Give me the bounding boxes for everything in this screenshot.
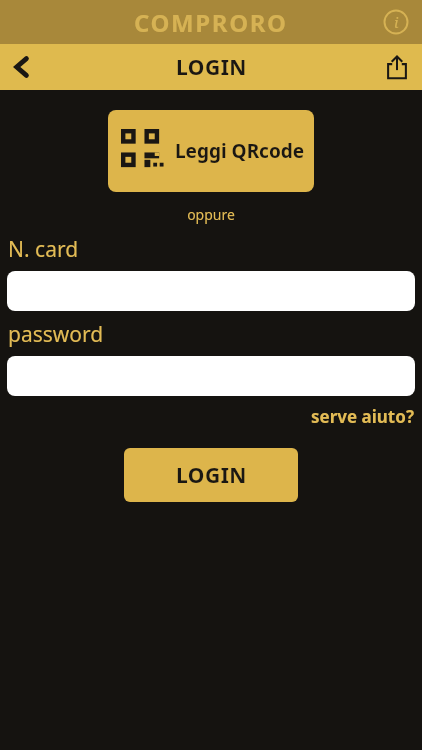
button[interactable]: serve aiuto?: [311, 405, 414, 428]
staticText: oppure: [0, 205, 422, 224]
button[interactable]: Back: [0, 45, 44, 89]
staticText: COMPRORO: [134, 6, 288, 39]
staticText: password: [8, 320, 422, 349]
button[interactable]: LOGIN: [124, 448, 298, 502]
button[interactable]: [7, 356, 415, 396]
staticText: LOGIN: [176, 53, 247, 82]
staticText: N. card: [8, 235, 422, 264]
staticText: i: [394, 12, 399, 32]
staticText: LOGIN: [176, 461, 247, 490]
button[interactable]: Leggi QRcode: [108, 110, 314, 192]
button[interactable]: Share: [376, 46, 418, 88]
button[interactable]: [7, 271, 415, 311]
staticText: Leggi QRcode: [175, 138, 305, 164]
button[interactable]: Info: [378, 4, 414, 40]
